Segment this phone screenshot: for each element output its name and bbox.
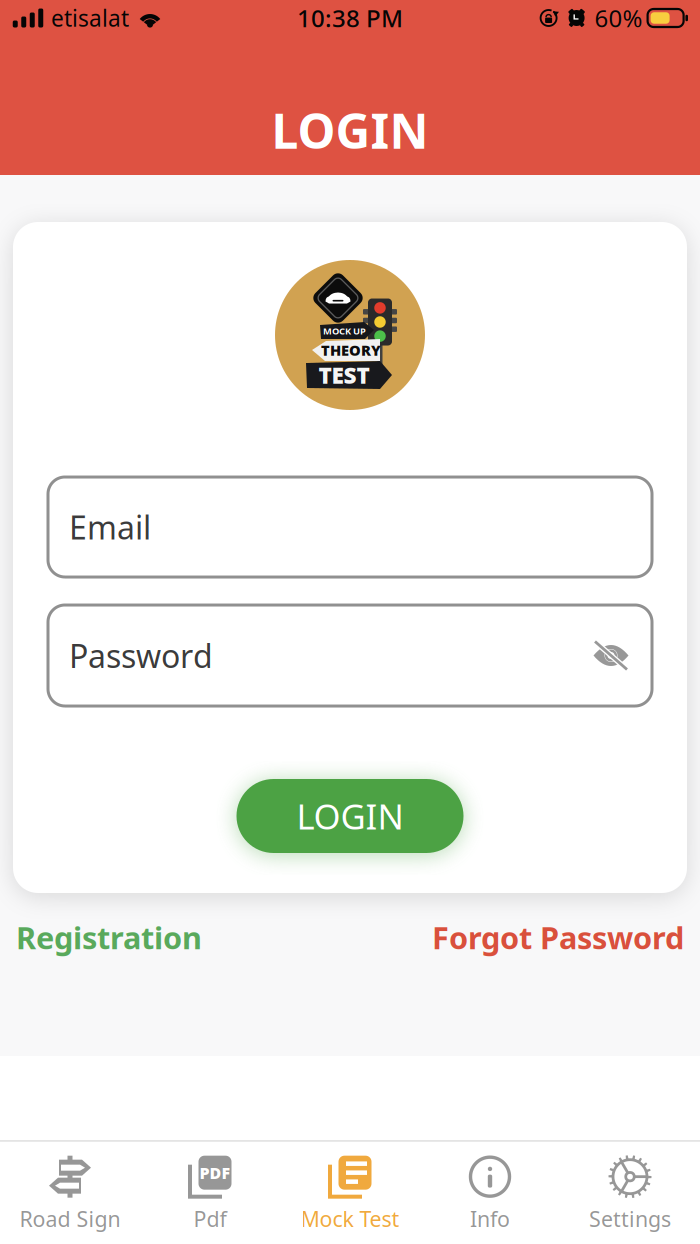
staticText: Forgot Password (432, 917, 684, 958)
button[interactable]: Forgot Password (432, 917, 684, 958)
button[interactable]: PDF (140, 1142, 280, 1244)
button[interactable]: Show password (581, 637, 631, 673)
staticText: Mock Test (300, 1205, 399, 1233)
staticText: LOGIN (271, 98, 428, 162)
staticText: TEST (318, 360, 369, 390)
staticText: 10:38 PM (297, 2, 403, 34)
staticText: Email (69, 506, 151, 548)
staticText: Pdf (193, 1205, 226, 1233)
staticText: etisalat (51, 3, 129, 33)
button[interactable]: Info (420, 1142, 560, 1244)
staticText: THEORY (321, 340, 381, 360)
staticText: PDF (199, 1162, 230, 1183)
staticText: Info (470, 1205, 510, 1233)
button[interactable]: Registration (16, 917, 202, 958)
button[interactable]: Settings (560, 1142, 700, 1244)
staticText: Registration (16, 917, 202, 958)
staticText: Road Sign (19, 1205, 120, 1233)
staticText: LOGIN (296, 793, 403, 839)
button[interactable]: LOGIN (236, 779, 463, 853)
staticText: Settings (589, 1205, 671, 1233)
staticText: 60% (595, 2, 643, 34)
staticText: MOCK UP (323, 325, 366, 337)
staticText: Password (69, 634, 213, 677)
button[interactable]: Mock Test (280, 1142, 420, 1244)
button[interactable]: Road Sign (0, 1142, 140, 1244)
